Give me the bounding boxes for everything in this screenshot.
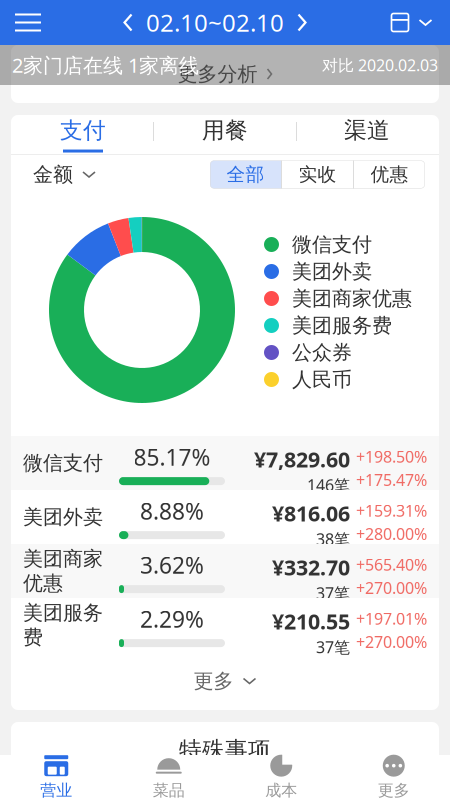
staticText: 美团服务费 — [23, 600, 103, 649]
button[interactable]: 营业 — [0, 755, 112, 800]
staticText: 渠道 — [344, 117, 390, 144]
button[interactable]: 菜品 — [112, 755, 225, 800]
button[interactable]: 金额 — [33, 155, 96, 194]
staticText: 微信支付 — [292, 232, 372, 257]
staticText: 美团服务费 — [292, 313, 392, 338]
button[interactable]: 更多分析 — [11, 45, 439, 103]
button[interactable]: 渠道 — [296, 115, 438, 154]
staticText: 更多分析 — [177, 62, 257, 86]
staticText: 85.17% — [133, 442, 210, 472]
staticText: 用餐 — [202, 117, 248, 144]
staticText: 2.29% — [140, 604, 204, 634]
staticText: 37笔 — [316, 636, 350, 657]
staticText: +280.00% — [356, 523, 427, 544]
staticText: 2家门店在线 1家离线 — [12, 52, 199, 78]
staticText: 优惠 — [370, 163, 408, 186]
staticText: +159.31% — [356, 500, 427, 521]
staticText: +270.00% — [356, 631, 427, 652]
staticText: +565.40% — [356, 554, 427, 575]
button[interactable]: 成本 — [225, 755, 337, 800]
button[interactable]: 支付 — [12, 115, 154, 154]
staticText: 微信支付 — [23, 451, 103, 475]
staticText: 38笔 — [316, 528, 350, 549]
staticText: 菜品 — [153, 781, 185, 800]
staticText: 02.10~02.10 — [146, 7, 284, 38]
staticText: +198.50% — [356, 446, 427, 467]
button[interactable]: Pick date range — [374, 0, 450, 45]
button[interactable]: 更多 — [11, 652, 439, 710]
staticText: 8.88% — [140, 496, 204, 526]
staticText: 成本 — [265, 781, 297, 800]
staticText: ¥210.55 — [272, 607, 350, 635]
staticText: 美团商家优惠 — [23, 546, 103, 595]
staticText: ¥816.06 — [272, 499, 350, 527]
staticText: 全部 — [226, 163, 264, 186]
staticText: 特殊事项 — [179, 736, 271, 764]
staticText: 37笔 — [316, 582, 350, 603]
staticText: +175.47% — [356, 469, 427, 490]
staticText: 支付 — [60, 117, 106, 144]
button[interactable]: 全部 — [210, 160, 281, 188]
staticText: 金额 — [33, 162, 73, 187]
staticText: 人民币 — [292, 367, 352, 392]
button[interactable]: 优惠 — [354, 160, 425, 188]
button[interactable]: 实收 — [282, 160, 353, 188]
button[interactable]: 更多 — [337, 755, 450, 800]
button[interactable]: Previous day — [110, 0, 146, 45]
staticText: 公众券 — [292, 340, 352, 365]
staticText: +197.01% — [356, 608, 427, 629]
button[interactable]: Next day — [284, 0, 320, 45]
staticText: 3.62% — [140, 550, 204, 580]
staticText: +270.00% — [356, 577, 427, 598]
button[interactable]: Menu — [0, 0, 56, 45]
staticText: 美团商家优惠 — [292, 286, 412, 311]
staticText: 营业 — [40, 781, 72, 800]
staticText: 对比 2020.02.03 — [322, 54, 438, 76]
button[interactable]: 用餐 — [154, 115, 296, 154]
staticText: 更多 — [378, 781, 410, 800]
staticText: ¥332.70 — [272, 553, 350, 581]
staticText: 实收 — [298, 163, 336, 186]
staticText: ¥7,829.60 — [254, 445, 350, 473]
staticText: 美团外卖 — [292, 259, 372, 284]
staticText: 146笔 — [307, 474, 350, 495]
staticText: 更多 — [193, 669, 233, 693]
staticText: 美团外卖 — [23, 505, 103, 529]
